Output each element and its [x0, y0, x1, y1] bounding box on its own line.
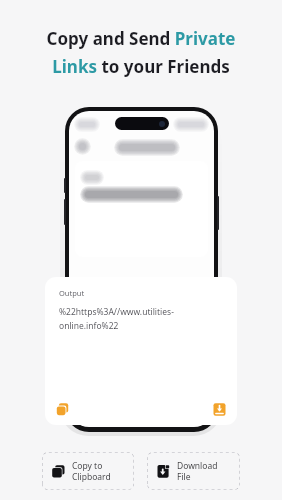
staticText: Download File: [177, 460, 218, 482]
button[interactable]: Copy to Clipboard: [42, 452, 134, 490]
button[interactable]: Download output: [212, 402, 227, 417]
button[interactable]: Copy output: [55, 402, 70, 417]
staticText: Copy to Clipboard: [72, 460, 111, 482]
staticText: %22https%3A//www.utilities- online.info%…: [59, 306, 174, 331]
button[interactable]: Download File: [147, 452, 240, 490]
staticText: Copy and Send Private Links to your Frie…: [8, 27, 274, 78]
staticText: Output: [59, 288, 85, 298]
